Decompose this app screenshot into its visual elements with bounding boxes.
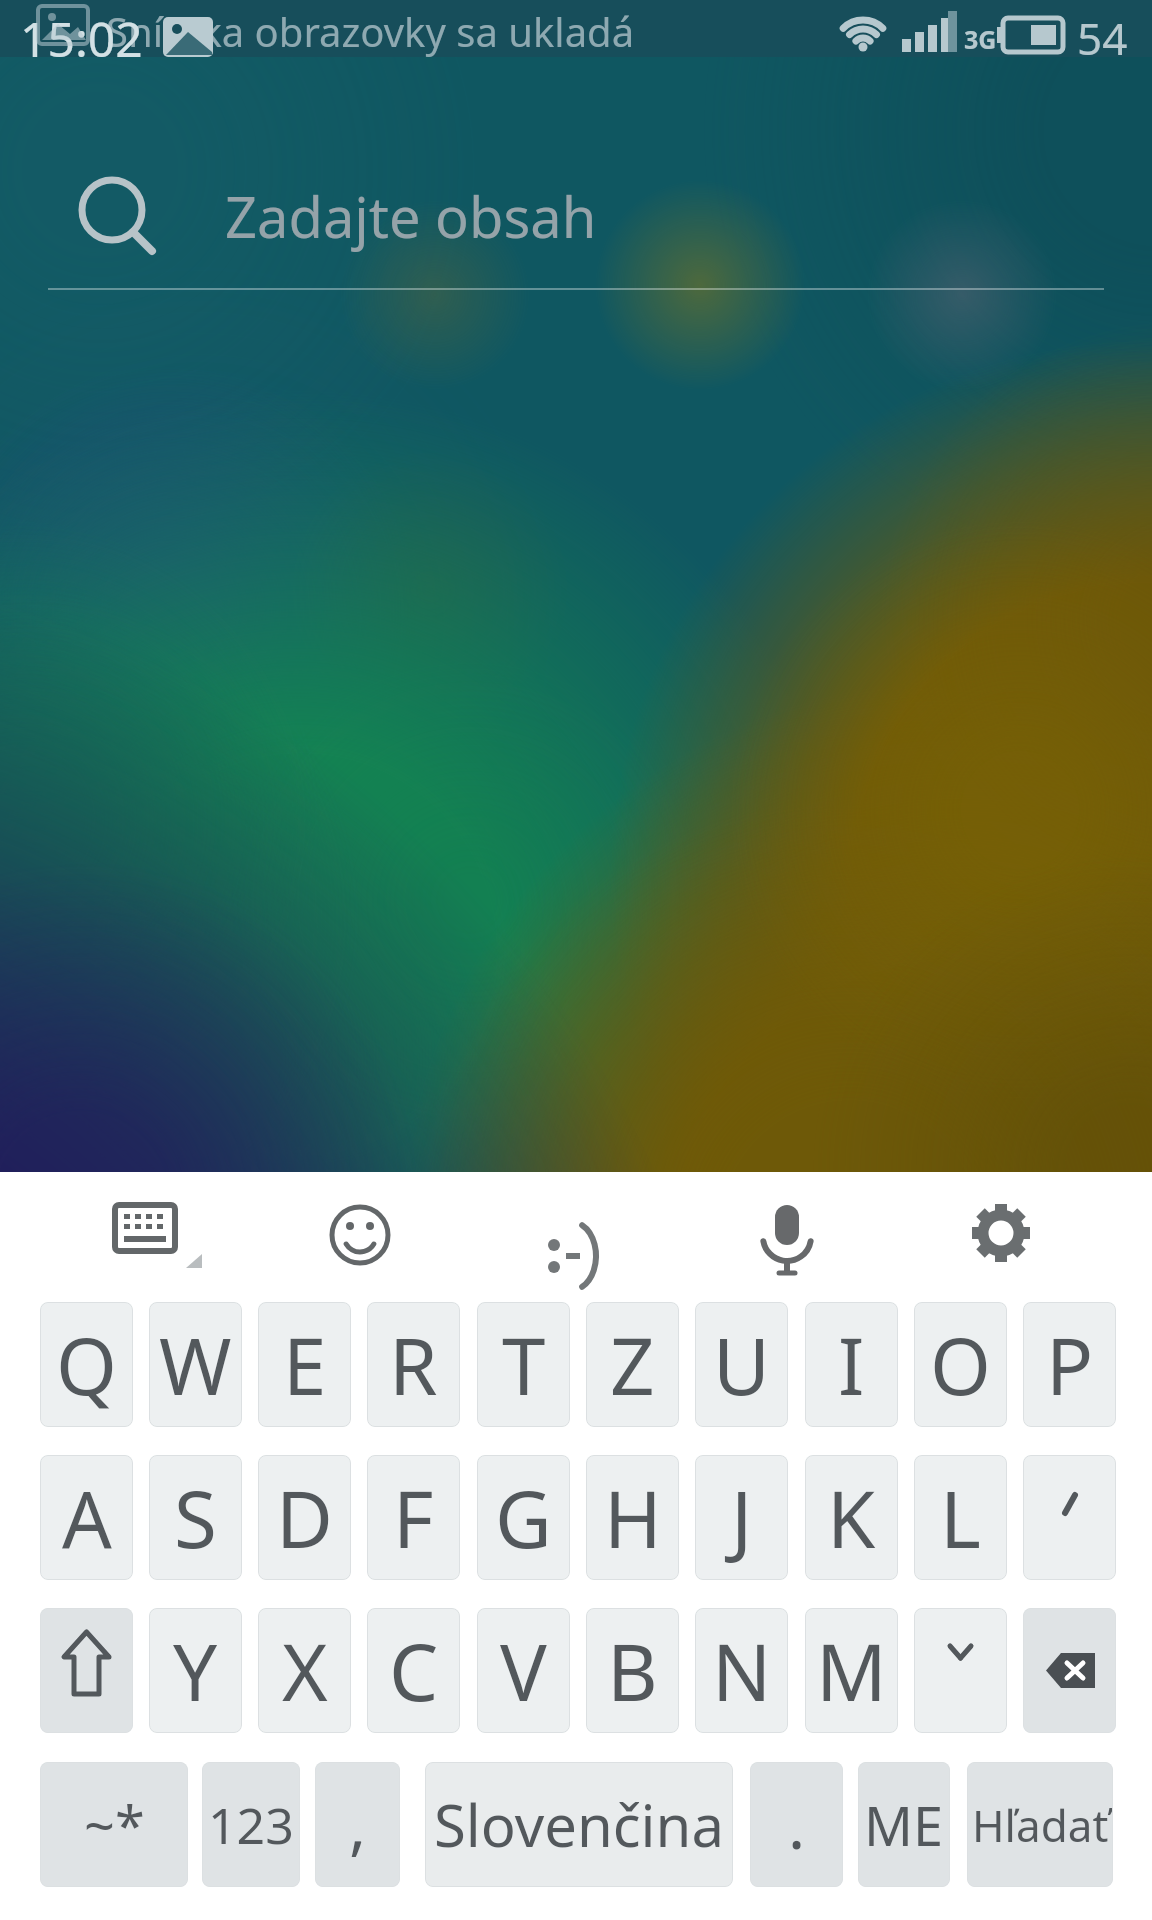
button[interactable]: [965, 1197, 1037, 1269]
staticText: P: [1046, 1312, 1094, 1418]
staticText: 3G: [964, 22, 997, 56]
button[interactable]: [530, 1192, 610, 1282]
button[interactable]: 123: [202, 1762, 300, 1887]
button[interactable]: Z: [586, 1302, 679, 1427]
staticText: 54: [1077, 8, 1128, 68]
staticText: V: [500, 1618, 547, 1724]
staticText: ,: [349, 1781, 367, 1868]
staticText: T: [502, 1312, 546, 1418]
button[interactable]: J: [695, 1455, 788, 1580]
staticText: ~*: [84, 1788, 145, 1862]
button[interactable]: Q: [40, 1302, 133, 1427]
staticText: Snímka obrazovky sa ukladá: [106, 4, 635, 58]
staticText: Z: [610, 1312, 655, 1418]
button[interactable]: N: [695, 1608, 788, 1733]
button[interactable]: [750, 1197, 825, 1282]
staticText: E: [283, 1312, 327, 1418]
staticText: O: [930, 1312, 991, 1418]
button[interactable]: W: [149, 1302, 242, 1427]
staticText: S: [174, 1465, 217, 1571]
button[interactable]: V: [477, 1608, 570, 1733]
button[interactable]: Slovenčina: [425, 1762, 733, 1887]
button[interactable]: K: [805, 1455, 898, 1580]
button[interactable]: ,: [315, 1762, 400, 1887]
staticText: 15:02: [20, 6, 143, 71]
button[interactable]: .: [750, 1762, 843, 1887]
staticText: R: [389, 1312, 438, 1418]
button[interactable]: C: [367, 1608, 460, 1733]
staticText: U: [713, 1312, 771, 1418]
staticText: Q: [56, 1312, 117, 1418]
button[interactable]: [1023, 1455, 1116, 1580]
button[interactable]: A: [40, 1455, 133, 1580]
staticText: X: [282, 1618, 328, 1724]
staticText: ME: [864, 1788, 944, 1862]
staticText: J: [731, 1465, 753, 1571]
button[interactable]: T: [477, 1302, 570, 1427]
button[interactable]: D: [258, 1455, 351, 1580]
staticText: F: [393, 1465, 434, 1571]
button[interactable]: Zadajte obsah: [48, 150, 1104, 290]
button[interactable]: U: [695, 1302, 788, 1427]
button[interactable]: ME: [858, 1762, 950, 1887]
button[interactable]: [325, 1200, 395, 1270]
staticText: K: [827, 1465, 876, 1571]
staticText: Zadajte obsah: [225, 178, 597, 254]
staticText: Y: [173, 1618, 218, 1724]
staticText: A: [62, 1465, 112, 1571]
staticText: W: [159, 1312, 232, 1418]
staticText: Hľadať: [972, 1795, 1109, 1855]
button[interactable]: [914, 1608, 1007, 1733]
button[interactable]: H: [586, 1455, 679, 1580]
button[interactable]: S: [149, 1455, 242, 1580]
button[interactable]: B: [586, 1608, 679, 1733]
staticText: N: [712, 1618, 772, 1724]
staticText: B: [607, 1618, 658, 1724]
button[interactable]: Hľadať: [967, 1762, 1113, 1887]
staticText: Slovenčina: [434, 1785, 724, 1864]
button[interactable]: ~*: [40, 1762, 188, 1887]
staticText: .: [788, 1781, 806, 1868]
button[interactable]: M: [805, 1608, 898, 1733]
button[interactable]: P: [1023, 1302, 1116, 1427]
button[interactable]: R: [367, 1302, 460, 1427]
button[interactable]: [40, 1608, 133, 1733]
button[interactable]: L: [914, 1455, 1007, 1580]
staticText: H: [604, 1465, 662, 1571]
staticText: M: [816, 1618, 887, 1724]
button[interactable]: [1023, 1608, 1116, 1733]
staticText: C: [389, 1618, 439, 1724]
button[interactable]: X: [258, 1608, 351, 1733]
button[interactable]: I: [805, 1302, 898, 1427]
button[interactable]: G: [477, 1455, 570, 1580]
staticText: L: [940, 1465, 981, 1571]
staticText: 123: [208, 1791, 294, 1859]
staticText: I: [838, 1312, 865, 1418]
button[interactable]: F: [367, 1455, 460, 1580]
button[interactable]: E: [258, 1302, 351, 1427]
button[interactable]: [100, 1202, 210, 1272]
staticText: G: [495, 1465, 552, 1571]
staticText: D: [276, 1465, 333, 1571]
button[interactable]: Y: [149, 1608, 242, 1733]
button[interactable]: O: [914, 1302, 1007, 1427]
